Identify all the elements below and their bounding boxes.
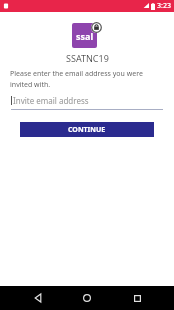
staticText: Invite email address — [13, 95, 89, 106]
staticText: CONTINUE — [68, 125, 106, 135]
button[interactable]: Back — [26, 286, 50, 310]
staticText: SSATNC19 — [66, 52, 109, 64]
staticText: Please enter the email address you were … — [10, 69, 164, 89]
button[interactable]: Home — [75, 286, 99, 310]
staticText: 3:23 — [157, 1, 171, 11]
staticText: ssal — [76, 30, 94, 42]
button[interactable]: Invite email address — [11, 95, 163, 110]
button[interactable]: Recent apps — [125, 286, 149, 310]
button[interactable]: CONTINUE — [20, 122, 154, 137]
